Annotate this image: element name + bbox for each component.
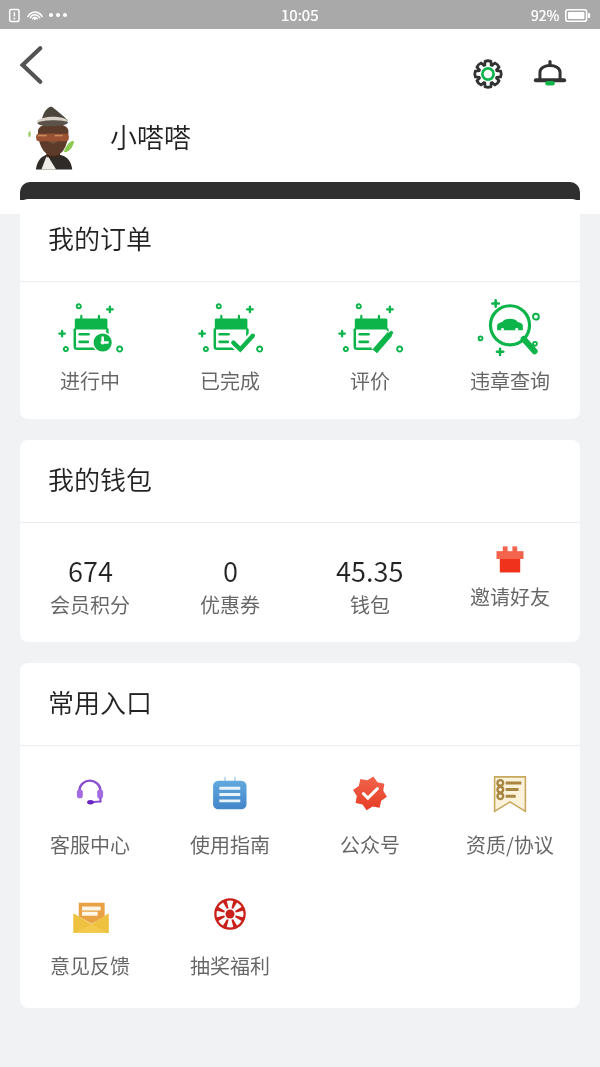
staticText: 资质/协议 <box>466 830 554 859</box>
button[interactable]: 公众号 <box>300 747 440 859</box>
staticText: 10:05 <box>281 4 319 26</box>
staticText: 我的钱包 <box>48 460 153 498</box>
button[interactable]: 使用指南 <box>160 747 300 859</box>
staticText: 违章查询 <box>470 366 550 395</box>
staticText: 小嗒嗒 <box>110 117 191 156</box>
button[interactable]: 45.35 <box>300 523 440 619</box>
staticText: 45.35 <box>336 551 404 590</box>
button[interactable]: 邀请好友 <box>440 523 580 611</box>
button[interactable]: 评价 <box>300 282 440 395</box>
button[interactable]: 资质/协议 <box>440 747 580 859</box>
button[interactable]: 客服中心 <box>20 747 160 859</box>
staticText: 评价 <box>350 366 390 395</box>
button[interactable]: 0 <box>160 523 300 619</box>
staticText: 钱包 <box>350 590 390 619</box>
button[interactable]: Settings <box>466 52 510 96</box>
button[interactable] <box>20 182 580 200</box>
button[interactable]: Notifications <box>528 52 572 96</box>
button[interactable]: 已完成 <box>160 282 300 395</box>
button[interactable]: 意见反馈 <box>20 868 160 980</box>
staticText: 意见反馈 <box>50 951 130 980</box>
staticText: 会员积分 <box>50 590 130 619</box>
staticText: 常用入口 <box>48 683 153 721</box>
staticText: 674 <box>68 551 113 590</box>
button[interactable]: 进行中 <box>20 282 160 395</box>
staticText: 抽奖福利 <box>190 951 270 980</box>
button[interactable]: 674 <box>20 523 160 619</box>
button[interactable]: 小嗒嗒 <box>0 100 600 176</box>
staticText: 0 <box>223 551 238 590</box>
staticText: 我的订单 <box>48 219 153 257</box>
staticText: 邀请好友 <box>470 582 550 611</box>
button[interactable]: 违章查询 <box>440 282 580 395</box>
staticText: 已完成 <box>200 366 260 395</box>
button[interactable]: Back <box>8 42 54 88</box>
staticText: 进行中 <box>60 366 120 395</box>
staticText: 92% <box>531 5 560 25</box>
staticText: 公众号 <box>340 830 400 859</box>
staticText: 优惠券 <box>200 590 260 619</box>
button[interactable]: 抽奖福利 <box>160 868 300 980</box>
staticText: 使用指南 <box>190 830 270 859</box>
staticText: 客服中心 <box>50 830 130 859</box>
